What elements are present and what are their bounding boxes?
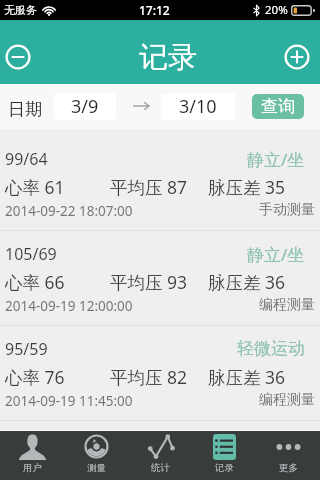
button[interactable]: Remove record: [3, 42, 33, 72]
staticText: 95/59: [5, 338, 48, 360]
staticText: 手动测量: [259, 201, 315, 219]
button[interactable]: 3/9: [54, 93, 116, 120]
staticText: 脉压差 36: [208, 270, 286, 294]
button[interactable]: Add record: [282, 42, 312, 72]
button[interactable]: 用户: [0, 431, 64, 480]
staticText: 编程测量: [259, 391, 315, 409]
staticText: 平均压 93: [110, 270, 188, 294]
button[interactable]: 统计: [128, 431, 192, 480]
staticText: 平均压 82: [110, 365, 188, 389]
button[interactable]: 测量: [64, 431, 128, 480]
staticText: 心率 66: [5, 270, 65, 294]
staticText: 记录: [215, 462, 234, 474]
staticText: 平均压 87: [110, 175, 188, 199]
button[interactable]: 95/59: [0, 326, 320, 421]
button[interactable]: 更多: [256, 431, 320, 480]
staticText: 静立/坐: [247, 243, 305, 266]
staticText: 3/9: [71, 94, 99, 119]
staticText: 心率 76: [5, 365, 65, 389]
staticText: 17:12: [139, 2, 170, 18]
staticText: 2014-09-22 18:07:00: [5, 202, 133, 220]
staticText: 无服务: [4, 3, 37, 17]
button[interactable]: 3/10: [161, 93, 235, 120]
button[interactable]: 105/69: [0, 231, 320, 326]
staticText: 轻微运动: [237, 338, 305, 359]
staticText: 99/64: [5, 148, 48, 170]
staticText: 更多: [279, 462, 298, 474]
staticText: 测量: [87, 462, 106, 474]
staticText: 20%: [265, 2, 288, 18]
staticText: 3/10: [179, 94, 217, 119]
button[interactable]: 99/64: [0, 136, 320, 231]
button[interactable]: 查询: [252, 94, 304, 119]
staticText: 心率 61: [5, 175, 65, 199]
staticText: 脉压差 36: [208, 365, 286, 389]
staticText: 编程测量: [259, 296, 315, 314]
staticText: 查询: [261, 96, 295, 117]
staticText: 统计: [151, 462, 170, 474]
staticText: 105/69: [5, 243, 57, 265]
button[interactable]: 记录: [192, 431, 256, 480]
staticText: 静立/坐: [247, 148, 305, 171]
staticText: 日期: [8, 99, 42, 120]
staticText: 2014-09-19 11:45:00: [5, 392, 133, 410]
staticText: 用户: [23, 462, 42, 474]
staticText: 2014-09-19 12:00:00: [5, 297, 133, 315]
staticText: 记录: [139, 39, 197, 76]
staticText: 脉压差 35: [208, 175, 286, 199]
